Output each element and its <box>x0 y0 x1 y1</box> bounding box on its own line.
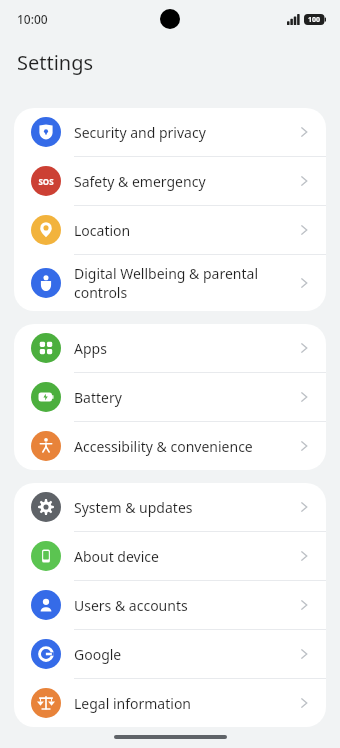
button[interactable]: Accessibility & convenience <box>14 422 326 470</box>
button[interactable]: Users & accounts <box>14 581 326 629</box>
button[interactable]: Apps <box>14 324 326 372</box>
staticText: Accessibility & convenience <box>74 437 288 456</box>
staticText: About device <box>74 547 288 566</box>
staticText: 100 <box>308 15 321 25</box>
button[interactable]: Digital Wellbeing & parental controls <box>14 255 326 311</box>
staticText: System & updates <box>74 498 288 517</box>
staticText: Battery <box>74 388 288 407</box>
staticText: Security and privacy <box>74 123 288 142</box>
button[interactable]: Legal information <box>14 679 326 727</box>
staticText: Settings <box>17 49 94 76</box>
staticText: Users & accounts <box>74 596 288 615</box>
button[interactable]: Google <box>14 630 326 678</box>
staticText: Location <box>74 221 288 240</box>
button[interactable]: Security and privacy <box>14 108 326 156</box>
staticText: SOS <box>38 176 54 187</box>
button[interactable]: Battery <box>14 373 326 421</box>
button[interactable]: System & updates <box>14 483 326 531</box>
staticText: Safety & emergency <box>74 172 288 191</box>
staticText: Legal information <box>74 694 288 713</box>
button[interactable]: About device <box>14 532 326 580</box>
staticText: 10:00 <box>17 11 48 27</box>
staticText: Apps <box>74 339 288 358</box>
button[interactable]: Location <box>14 206 326 254</box>
staticText: Google <box>74 645 288 664</box>
button[interactable]: SOS <box>14 157 326 205</box>
staticText: Digital Wellbeing & parental controls <box>74 264 288 302</box>
